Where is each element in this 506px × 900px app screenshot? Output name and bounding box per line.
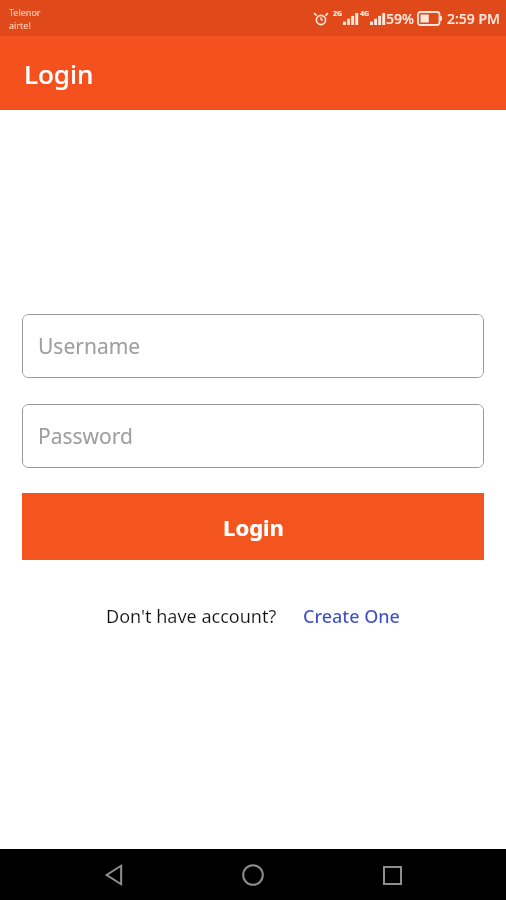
staticText: Username xyxy=(38,332,141,361)
staticText: Create One xyxy=(303,604,400,629)
staticText: Telenor xyxy=(9,6,41,18)
staticText: 2:59 PM xyxy=(447,9,500,28)
button[interactable]: Username xyxy=(22,314,484,378)
button[interactable]: Home xyxy=(229,851,277,899)
button[interactable]: Create One xyxy=(303,604,400,629)
staticText: Don't have account? xyxy=(106,604,277,629)
staticText: 4G xyxy=(360,9,370,19)
button[interactable]: Login xyxy=(22,493,484,560)
button[interactable]: Back xyxy=(91,851,139,899)
staticText: Login xyxy=(24,56,94,91)
button[interactable]: Recent apps xyxy=(368,851,416,899)
staticText: airtel xyxy=(9,19,31,31)
staticText: Password xyxy=(38,422,133,451)
staticText: 59% xyxy=(386,9,414,28)
staticText: 2G xyxy=(333,9,343,19)
staticText: Login xyxy=(223,512,284,542)
button[interactable]: Password xyxy=(22,404,484,468)
